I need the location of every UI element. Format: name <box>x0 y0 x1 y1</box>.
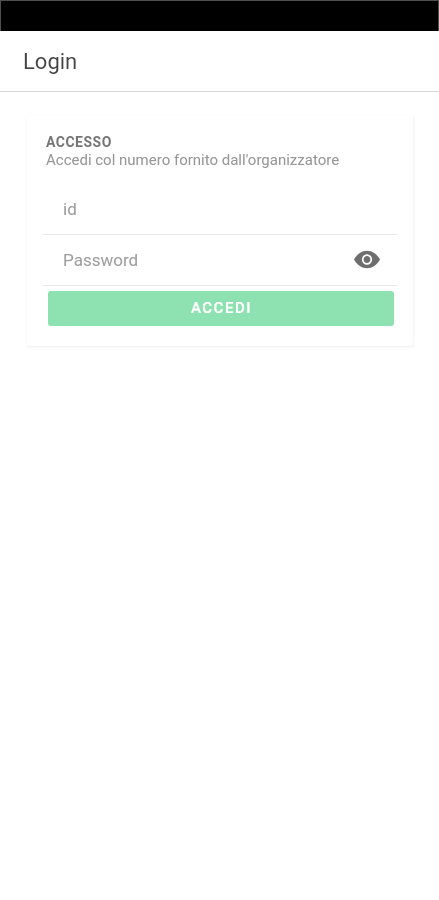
button[interactable]: id <box>43 194 397 235</box>
staticText: id <box>63 199 77 219</box>
button[interactable]: ACCEDI <box>48 291 394 326</box>
button[interactable]: Password <box>43 245 397 286</box>
staticText: Login <box>23 49 78 75</box>
staticText: ACCESSO <box>46 134 112 150</box>
staticText: ACCEDI <box>191 299 252 317</box>
button[interactable]: Show password <box>354 247 380 272</box>
staticText: Password <box>63 250 139 270</box>
staticText: Accedi col numero fornito dall'organizza… <box>46 151 340 169</box>
